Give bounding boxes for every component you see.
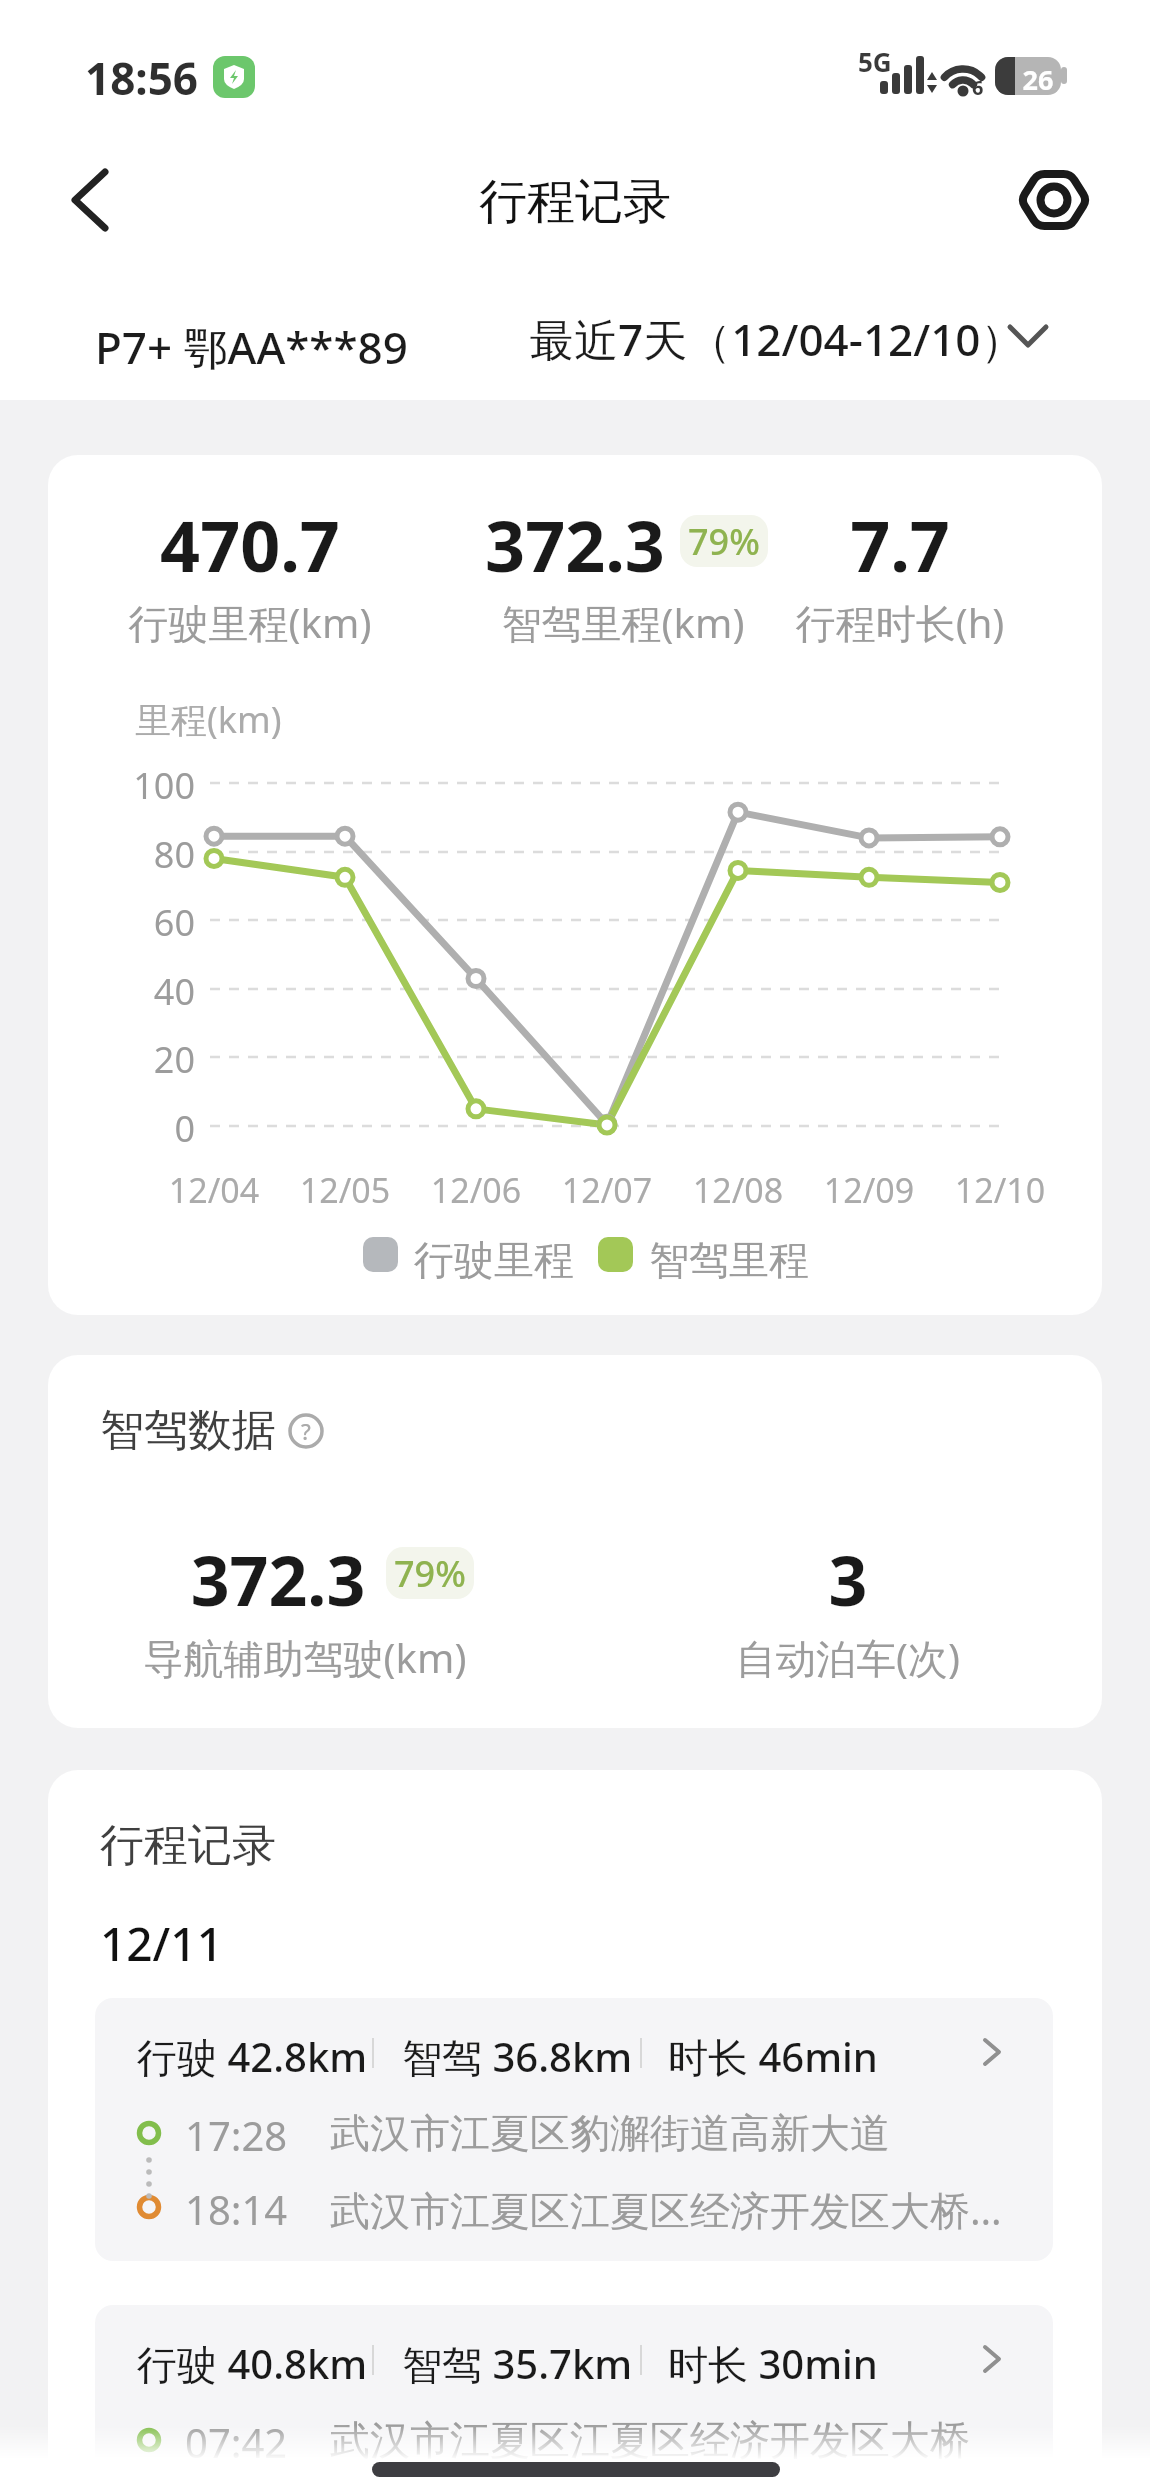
staticText: 智驾里程(km) [473, 595, 773, 650]
staticText: 12/08 [678, 1167, 798, 1213]
staticText: 行程记录 [100, 1818, 276, 1873]
staticText: 79% [688, 517, 760, 566]
staticText: 0 [115, 1104, 195, 1153]
staticText: P7+ 鄂AA***89 [95, 317, 408, 377]
staticText: 智驾数据 [100, 1403, 276, 1458]
staticText: 26 [1015, 61, 1061, 95]
staticText: 12/05 [285, 1167, 405, 1213]
staticText: 行驶里程(km) [100, 595, 400, 650]
staticText: 12/07 [547, 1167, 667, 1213]
staticText: 12/06 [416, 1167, 536, 1213]
staticText: 武汉市江夏区江夏区经济开发区大桥 [330, 2415, 970, 2465]
staticText: 6 [972, 74, 984, 101]
button[interactable]: P7+ 鄂AA***89 [85, 295, 398, 371]
staticText: 导航辅助驾驶(km) [105, 1630, 505, 1685]
staticText: 12/10 [940, 1167, 1060, 1213]
staticText: 行驶 40.8km [137, 2336, 368, 2391]
staticText: 12/09 [809, 1167, 929, 1213]
staticText: 80 [115, 830, 195, 879]
staticText: 智驾里程 [649, 1235, 809, 1285]
staticText: 18:56 [85, 48, 199, 108]
staticText: 100 [115, 761, 195, 810]
button[interactable]: 最近7天（12/04-12/10） [520, 295, 1060, 371]
staticText: 行程记录 [0, 172, 1150, 232]
staticText: 自动泊车(次) [698, 1630, 998, 1685]
staticText: 武汉市江夏区江夏区经济开发区大桥… [330, 2182, 1002, 2237]
staticText: 17:28 [185, 2108, 288, 2162]
button[interactable] [1018, 164, 1090, 236]
button[interactable] [60, 160, 140, 240]
staticText: 时长 46min [668, 2029, 878, 2084]
staticText: 79% [394, 1549, 466, 1598]
staticText: 372.3 [178, 1533, 378, 1626]
button[interactable]: 行驶 40.8km [95, 2305, 1053, 2490]
staticText: 18:14 [185, 2182, 288, 2236]
staticText: 12/11 [100, 1912, 223, 1975]
staticText: 行程时长(h) [750, 595, 1050, 650]
staticText: 20 [115, 1035, 195, 1084]
staticText: 7.7 [800, 497, 1000, 592]
staticText: 里程(km) [135, 695, 282, 744]
staticText: 372.3 [480, 497, 670, 592]
staticText: 07:42 [185, 2415, 288, 2469]
staticText: 60 [115, 898, 195, 947]
button[interactable]: 行驶 42.8km [95, 1998, 1053, 2261]
staticText: 470.7 [100, 497, 400, 592]
staticText: 行驶 42.8km [137, 2029, 368, 2084]
staticText: 智驾 36.8km [402, 2029, 633, 2084]
staticText: 最近7天（12/04-12/10） [530, 309, 1025, 369]
staticText: 时长 30min [668, 2336, 878, 2391]
staticText: 行驶里程 [414, 1235, 574, 1285]
staticText: 3 [698, 1533, 998, 1626]
staticText: 武汉市江夏区豹澥街道高新大道 [330, 2108, 890, 2158]
staticText: 40 [115, 967, 195, 1016]
staticText: 5G [858, 44, 892, 79]
staticText: 智驾 35.7km [402, 2336, 633, 2391]
staticText: ? [288, 1416, 324, 1446]
staticText: 12/04 [154, 1167, 274, 1213]
